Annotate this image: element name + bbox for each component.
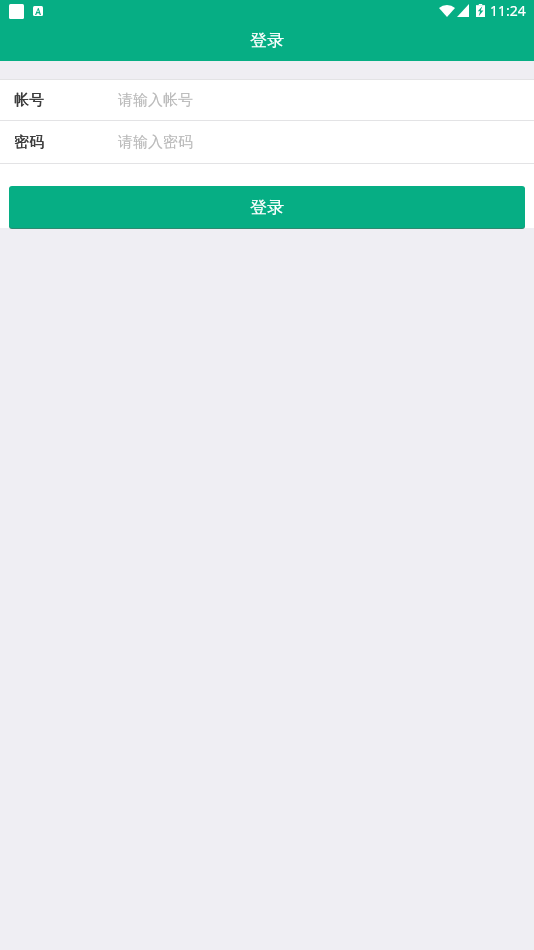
staticText: 11:24 (490, 1, 526, 20)
staticText: 登录 (250, 30, 284, 51)
staticText: 帐号 (14, 91, 44, 110)
other: Battery charging (476, 4, 485, 17)
other: Screenshot (9, 4, 24, 19)
button[interactable]: 登录 (9, 186, 525, 228)
staticText: 登录 (250, 197, 284, 218)
staticText: 请输入帐号 (118, 91, 193, 110)
staticText: 请输入密码 (118, 133, 193, 152)
staticText: 帐号 (14, 91, 44, 110)
staticText: 密码 (14, 133, 44, 152)
staticText: 密码 (14, 133, 44, 152)
other: Alarm (33, 6, 43, 16)
staticText: 密码 (14, 133, 44, 152)
other: Wi-Fi (439, 5, 455, 17)
other: Cellular signal (457, 4, 469, 17)
staticText: 帐号 (14, 91, 44, 110)
button[interactable]: 密码 (0, 121, 534, 163)
button[interactable]: 帐号 (0, 80, 534, 120)
